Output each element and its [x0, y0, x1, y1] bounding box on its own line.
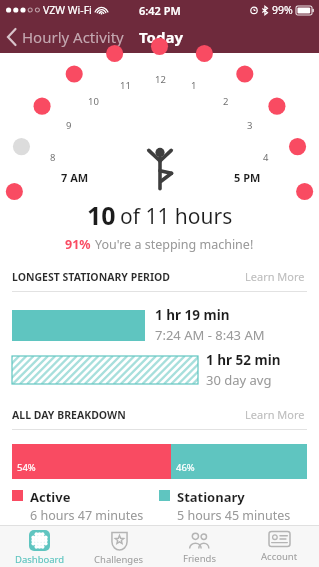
- staticText: Dashboard: [15, 553, 65, 566]
- staticText: Active: [30, 488, 71, 506]
- staticText: Friends: [183, 552, 216, 565]
- staticText: LONGEST STATIONARY PERIOD: [12, 270, 171, 284]
- button[interactable]: Challenges: [79, 526, 159, 566]
- staticText: 99%: [272, 3, 293, 17]
- other: Account: [268, 530, 291, 548]
- staticText: Challenges: [94, 553, 144, 566]
- staticText: VZW Wi-Fi: [43, 3, 92, 17]
- staticText: 54%: [17, 461, 36, 474]
- button[interactable]: Hourly Activity: [0, 23, 132, 51]
- staticText: 10: [88, 95, 99, 108]
- staticText: 2: [223, 95, 229, 108]
- staticText: 8: [50, 151, 56, 164]
- button[interactable]: Friends: [159, 526, 239, 565]
- staticText: 1 hr 19 min: [155, 306, 230, 324]
- staticText: 7 AM: [61, 170, 89, 185]
- other: Challenges: [109, 530, 130, 551]
- staticText: of 11 hours: [120, 202, 233, 231]
- button[interactable]: Learn More: [243, 267, 307, 286]
- staticText: 1 hr 52 min: [206, 351, 281, 369]
- button[interactable]: Account: [239, 526, 319, 563]
- staticText: 30 day avg: [206, 371, 272, 389]
- staticText: 3: [247, 119, 253, 132]
- staticText: 5 PM: [234, 170, 261, 185]
- staticText: 91%: [65, 236, 91, 253]
- staticText: 46%: [176, 461, 195, 474]
- button[interactable]: Learn More: [243, 405, 307, 424]
- staticText: Learn More: [245, 269, 305, 284]
- staticText: 6 hours 47 minutes: [30, 507, 144, 524]
- staticText: Stationary: [177, 488, 245, 506]
- button[interactable]: Dashboard: [0, 526, 79, 566]
- staticText: Today: [139, 27, 184, 47]
- staticText: 6:42 PM: [139, 3, 181, 18]
- staticText: Learn More: [245, 407, 305, 422]
- staticText: Hourly Activity: [22, 27, 124, 47]
- staticText: 10: [87, 198, 116, 232]
- other: Friends: [187, 530, 211, 550]
- staticText: 5 hours 45 minutes: [177, 507, 291, 524]
- staticText: 9: [66, 119, 72, 132]
- other: Dashboard: [29, 530, 50, 551]
- staticText: 1: [191, 79, 197, 92]
- staticText: 12: [155, 73, 166, 86]
- staticText: 4: [263, 151, 269, 164]
- staticText: 7:24 AM - 8:43 AM: [155, 326, 265, 344]
- staticText: You're a stepping machine!: [95, 236, 254, 253]
- staticText: ALL DAY BREAKDOWN: [12, 408, 126, 422]
- staticText: 11: [120, 79, 131, 92]
- staticText: Account: [261, 550, 298, 563]
